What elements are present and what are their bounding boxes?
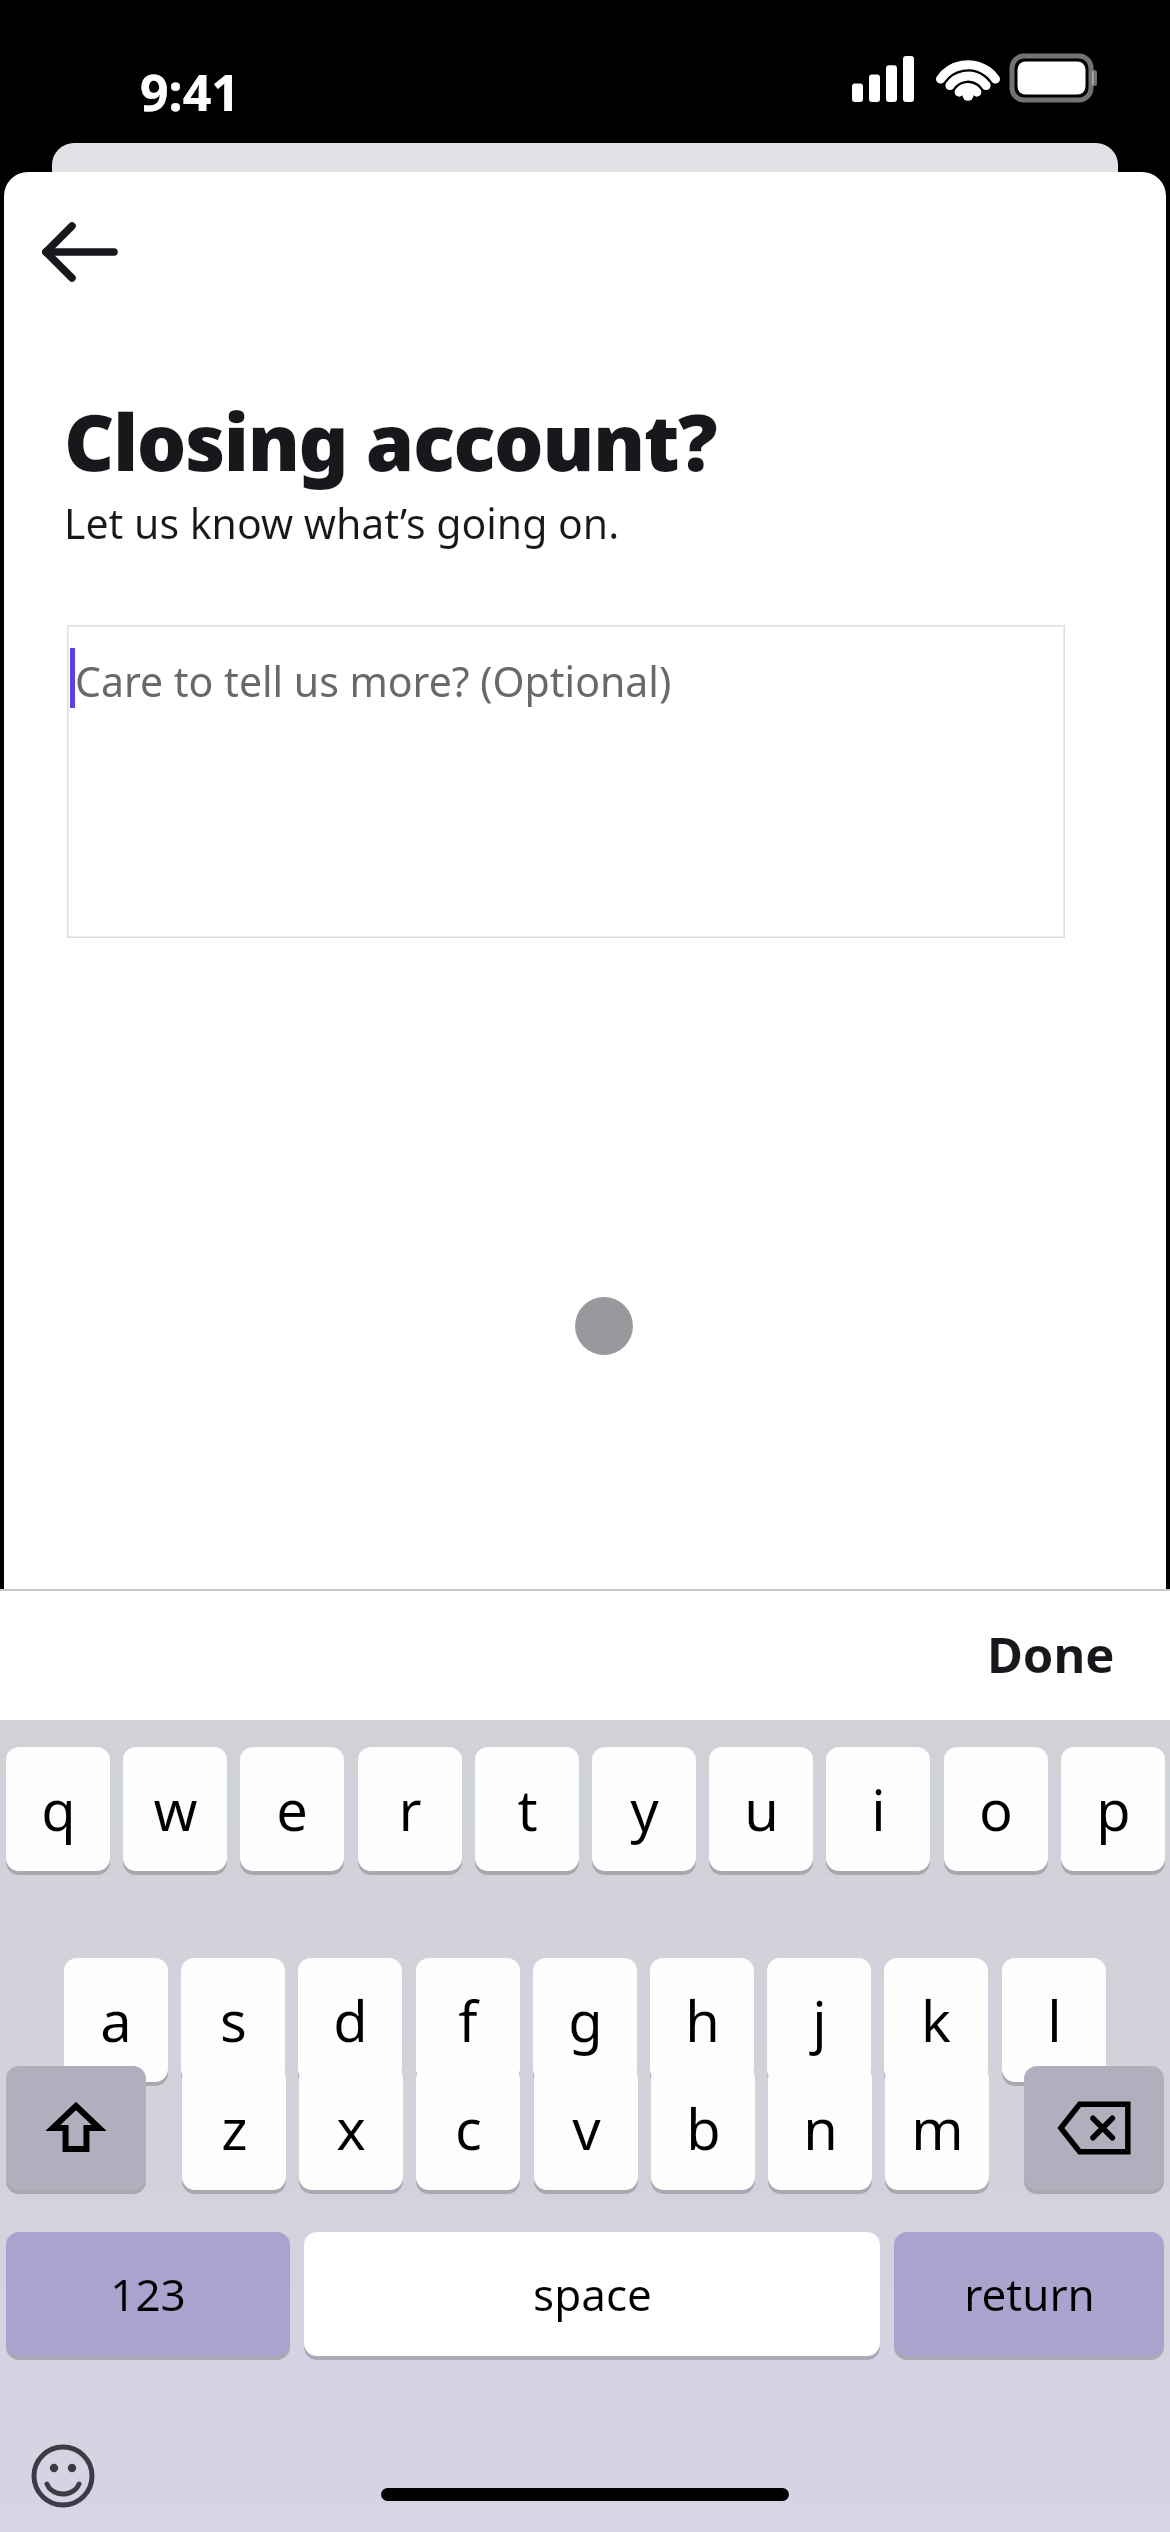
button[interactable]: a <box>64 1958 168 2082</box>
button[interactable]: r <box>358 1747 462 1871</box>
button[interactable]: w <box>123 1747 227 1871</box>
staticText: g <box>568 1982 603 2058</box>
button[interactable]: l <box>1002 1958 1106 2082</box>
button[interactable]: u <box>709 1747 813 1871</box>
staticText: u <box>744 1771 779 1847</box>
button[interactable]: e <box>240 1747 344 1871</box>
staticText: t <box>517 1771 538 1847</box>
button[interactable]: x <box>299 2066 403 2190</box>
button[interactable]: o <box>944 1747 1048 1871</box>
button[interactable]: c <box>416 2066 520 2190</box>
button[interactable]: f <box>416 1958 520 2082</box>
button[interactable]: v <box>534 2066 638 2190</box>
staticText: space <box>533 2264 652 2324</box>
button[interactable]: j <box>767 1958 871 2082</box>
staticText: p <box>1096 1771 1131 1847</box>
staticText: h <box>685 1982 720 2058</box>
button[interactable]: b <box>651 2066 755 2190</box>
button[interactable]: Emoji <box>32 2445 94 2507</box>
button[interactable]: Backspace <box>1024 2066 1164 2190</box>
staticText: Let us know what’s going on. <box>64 495 620 551</box>
button[interactable]: h <box>650 1958 754 2082</box>
staticText: Closing account? <box>64 388 717 494</box>
button[interactable]: i <box>826 1747 930 1871</box>
staticText: o <box>979 1771 1013 1847</box>
button[interactable]: m <box>885 2066 989 2190</box>
button[interactable]: q <box>6 1747 110 1871</box>
button[interactable]: k <box>884 1958 988 2082</box>
button[interactable]: s <box>181 1958 285 2082</box>
staticText: y <box>630 1771 659 1847</box>
staticText: d <box>333 1982 368 2058</box>
button[interactable]: z <box>182 2066 286 2190</box>
button[interactable]: n <box>768 2066 872 2190</box>
button[interactable]: Back <box>24 196 136 308</box>
button[interactable]: Done <box>932 1589 1170 1720</box>
button[interactable]: 123 <box>6 2232 290 2356</box>
button[interactable]: y <box>592 1747 696 1871</box>
staticText: l <box>1047 1982 1062 2058</box>
button[interactable]: Care to tell us more? (Optional) <box>67 625 1065 938</box>
button[interactable]: d <box>298 1958 402 2082</box>
staticText: s <box>220 1982 247 2058</box>
staticText: 123 <box>110 2264 186 2324</box>
staticText: w <box>153 1771 198 1847</box>
staticText: 9:41 <box>140 58 240 126</box>
staticText: x <box>336 2090 366 2166</box>
staticText: b <box>686 2090 721 2166</box>
staticText: n <box>803 2090 838 2166</box>
button[interactable]: g <box>533 1958 637 2082</box>
staticText: a <box>100 1982 132 2058</box>
staticText: e <box>276 1771 308 1847</box>
staticText: z <box>221 2090 248 2166</box>
staticText: i <box>871 1771 886 1847</box>
staticText: c <box>455 2090 482 2166</box>
button[interactable]: t <box>475 1747 579 1871</box>
staticText: Done <box>987 1621 1115 1688</box>
button[interactable]: p <box>1061 1747 1165 1871</box>
button[interactable]: Shift <box>6 2066 146 2190</box>
staticText: m <box>911 2090 964 2166</box>
staticText: v <box>572 2090 601 2166</box>
staticText: k <box>921 1982 951 2058</box>
staticText: r <box>398 1771 422 1847</box>
staticText: j <box>812 1982 827 2058</box>
button[interactable]: space <box>304 2232 880 2356</box>
staticText: return <box>964 2264 1095 2324</box>
staticText: q <box>41 1771 76 1847</box>
staticText: Care to tell us more? (Optional) <box>75 653 672 709</box>
button[interactable]: return <box>894 2232 1164 2356</box>
staticText: f <box>458 1982 478 2058</box>
